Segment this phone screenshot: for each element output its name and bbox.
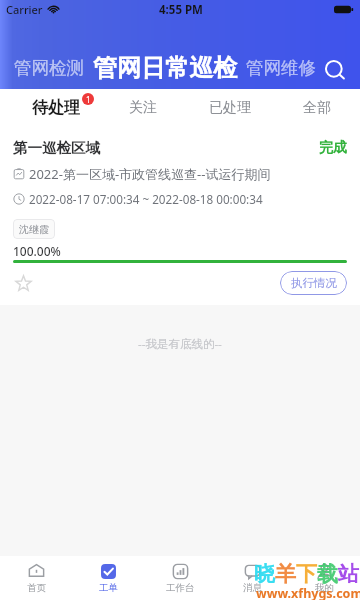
staticText: www.xfhygs.com bbox=[256, 585, 360, 600]
staticText: 工作台 bbox=[166, 582, 195, 594]
staticText: 已处理 bbox=[209, 99, 251, 117]
button[interactable]: 管网检测 bbox=[14, 57, 84, 79]
staticText: 站 bbox=[338, 561, 359, 587]
staticText: 首页 bbox=[27, 582, 46, 594]
staticText: 第一巡检区域 bbox=[13, 139, 100, 157]
button[interactable]: 已处理 bbox=[186, 89, 273, 127]
button[interactable]: 消息 bbox=[216, 556, 288, 600]
staticText: 完成 bbox=[319, 139, 347, 157]
staticText: 100.00% bbox=[13, 243, 61, 259]
staticText: 2022-第一区域-市政管线巡查--试运行期间 bbox=[29, 165, 271, 183]
staticText: 待处理 bbox=[32, 98, 80, 118]
button[interactable]: 工单 bbox=[72, 556, 144, 600]
button[interactable]: Favorite bbox=[13, 273, 33, 293]
button[interactable]: 管网维修 bbox=[246, 57, 316, 79]
staticText: 载 bbox=[317, 561, 338, 587]
button[interactable]: 我的 bbox=[288, 556, 360, 600]
staticText: --我是有底线的-- bbox=[138, 336, 222, 352]
staticText: 我的 bbox=[315, 582, 334, 594]
button[interactable]: 第一巡检区域 bbox=[0, 127, 360, 305]
staticText: 执行情况 bbox=[291, 276, 337, 290]
button[interactable]: 首页 bbox=[0, 556, 72, 600]
button[interactable]: 待处理 bbox=[13, 89, 99, 127]
staticText: 全部 bbox=[303, 99, 331, 117]
button[interactable]: 全部 bbox=[273, 89, 360, 127]
staticText: 晓 bbox=[254, 561, 275, 587]
staticText: 4:55 PM bbox=[159, 2, 203, 18]
button[interactable]: 执行情况 bbox=[280, 271, 347, 295]
staticText: 羊 bbox=[275, 561, 296, 587]
staticText: 2022-08-17 07:00:34 ~ 2022-08-18 00:00:3… bbox=[29, 191, 263, 207]
staticText: 工单 bbox=[99, 582, 118, 594]
staticText: 1 bbox=[86, 94, 91, 105]
staticText: 沈继霞 bbox=[19, 223, 49, 236]
staticText: 下 bbox=[296, 561, 317, 587]
staticText: Carrier bbox=[6, 2, 43, 17]
button[interactable]: 工作台 bbox=[144, 556, 216, 600]
staticText: 消息 bbox=[243, 582, 262, 594]
button[interactable]: 关注 bbox=[99, 89, 186, 127]
staticText: 关注 bbox=[129, 99, 157, 117]
button[interactable]: Search bbox=[321, 56, 349, 84]
button[interactable]: 管网日常巡检 bbox=[93, 53, 237, 83]
